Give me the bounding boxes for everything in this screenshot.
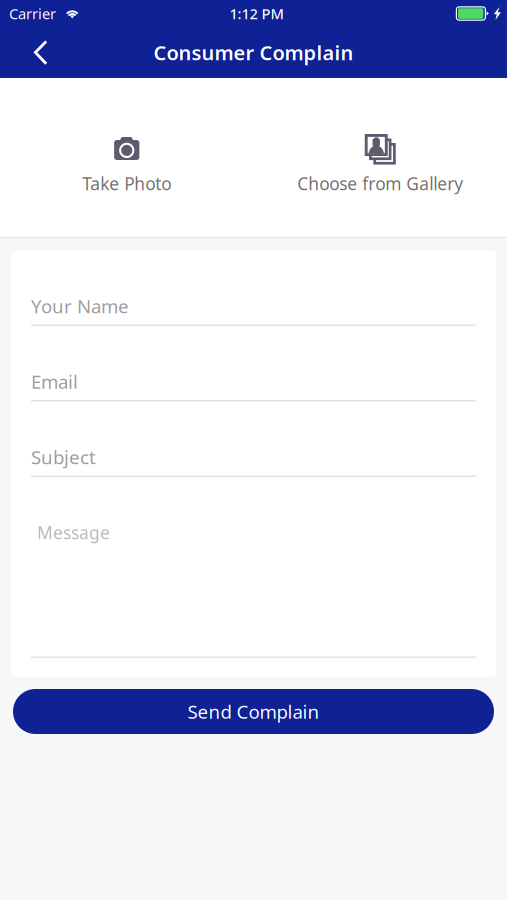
button[interactable]: Take Photo [0, 78, 253, 237]
staticText: Your Name [31, 294, 129, 318]
button[interactable]: Back [0, 27, 69, 78]
staticText: Carrier [9, 4, 56, 23]
staticText: Subject [31, 445, 96, 469]
staticText: Consumer Complain [153, 39, 353, 66]
staticText: Message [37, 521, 110, 544]
staticText: Send Complain [187, 699, 319, 724]
button[interactable]: Choose from Gallery [253, 78, 507, 237]
staticText: Email [31, 369, 78, 394]
staticText: 1:12 PM [229, 4, 283, 23]
staticText: Choose from Gallery [297, 172, 463, 195]
staticText: Take Photo [82, 172, 171, 195]
button[interactable]: Send Complain [13, 689, 494, 734]
